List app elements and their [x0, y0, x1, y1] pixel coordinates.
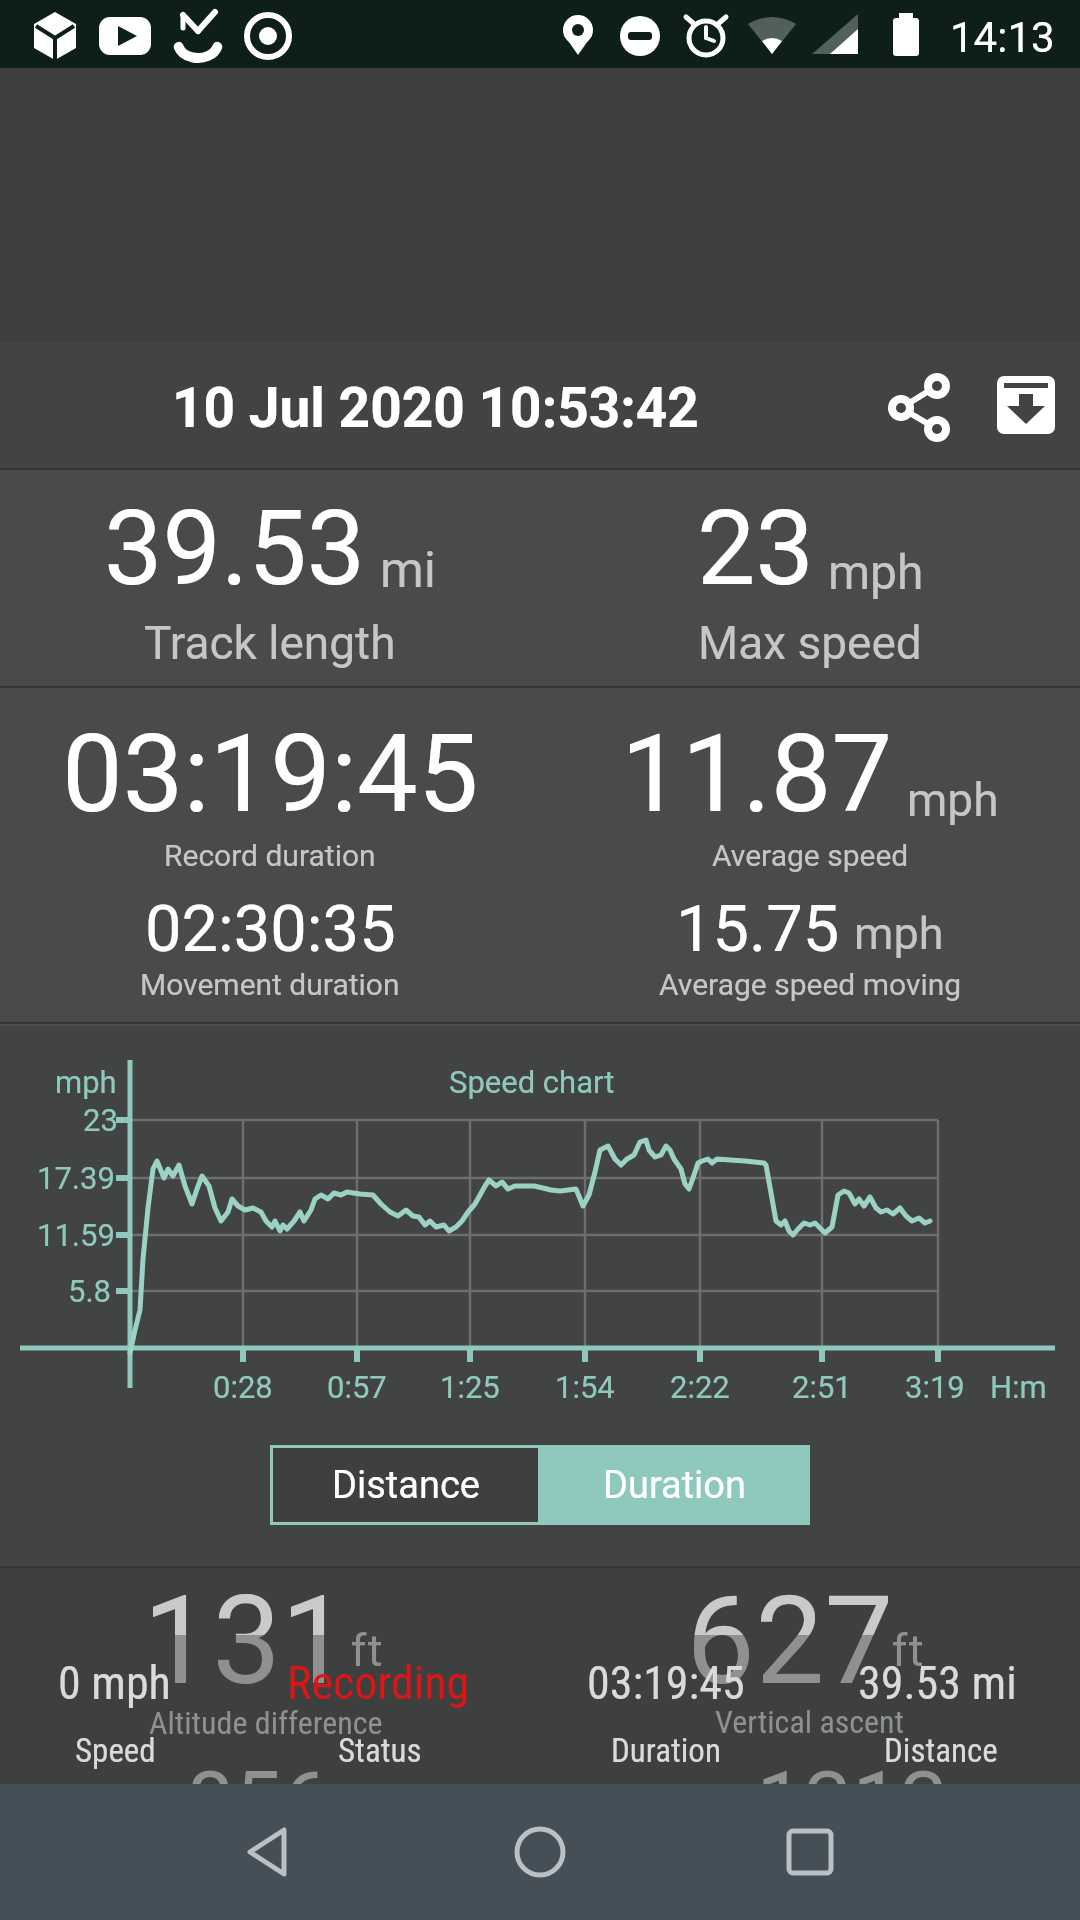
staticText: 39.53 mi	[858, 1656, 1017, 1710]
button[interactable]	[760, 1802, 860, 1902]
button[interactable]: Distance	[270, 1445, 540, 1525]
button[interactable]	[860, 362, 950, 452]
staticText: 11.59	[37, 1217, 115, 1253]
staticText: 11.87	[621, 711, 893, 838]
staticText: mi	[380, 541, 437, 600]
staticText: H:m	[990, 1369, 1047, 1405]
staticText: 2:51	[792, 1369, 852, 1405]
button[interactable]: Duration	[540, 1445, 810, 1525]
button[interactable]	[490, 1802, 590, 1902]
button[interactable]: 39.53	[0, 470, 540, 688]
staticText: Status	[338, 1731, 422, 1770]
staticText: Distance	[332, 1463, 480, 1508]
staticText: 02:30:35	[145, 891, 396, 967]
staticText: Duration	[603, 1463, 747, 1508]
staticText: 3:19	[905, 1369, 965, 1405]
staticText: 2:22	[670, 1369, 730, 1405]
staticText: Speed chart	[449, 1064, 615, 1100]
staticText: mph	[907, 773, 999, 827]
staticText: mph	[854, 907, 944, 960]
staticText: mph	[55, 1064, 117, 1100]
staticText: mph	[828, 544, 924, 600]
staticText: Track length	[144, 616, 396, 670]
staticText: 03:19:45	[587, 1656, 745, 1710]
staticText: 1:25	[440, 1369, 500, 1405]
staticText: Record duration	[164, 838, 376, 873]
staticText: 15.75	[676, 891, 840, 967]
staticText: 23	[83, 1102, 118, 1138]
staticText: Max speed	[698, 616, 922, 670]
staticText: 5.8	[68, 1273, 112, 1309]
staticText: 1:54	[555, 1369, 615, 1405]
staticText: 03:19:45	[62, 711, 479, 838]
staticText: Average speed	[712, 838, 909, 873]
staticText: 14:13	[950, 13, 1055, 62]
staticText: 0:57	[327, 1369, 387, 1405]
staticText: Movement duration	[140, 967, 400, 1002]
staticText: Distance	[884, 1731, 998, 1770]
staticText: Duration	[611, 1731, 721, 1770]
staticText: 0:28	[213, 1369, 273, 1405]
staticText: 0 mph	[58, 1656, 171, 1710]
staticText: Speed	[75, 1731, 156, 1770]
button[interactable]	[993, 372, 1059, 438]
button[interactable]: 23	[540, 470, 1080, 688]
staticText: 23	[697, 488, 814, 610]
staticText: Vertical ascent	[715, 1703, 905, 1741]
staticText: Recording	[287, 1656, 470, 1710]
staticText: Average speed moving	[659, 967, 962, 1002]
staticText: Altitude difference	[149, 1704, 383, 1742]
button[interactable]	[220, 1802, 320, 1902]
staticText: 39.53	[104, 488, 366, 610]
staticText: 17.39	[37, 1160, 115, 1196]
button[interactable]: 03:19:45	[0, 688, 540, 1024]
button[interactable]: 11.87	[540, 688, 1080, 1024]
staticText: 10 Jul 2020 10:53:42	[172, 376, 699, 440]
